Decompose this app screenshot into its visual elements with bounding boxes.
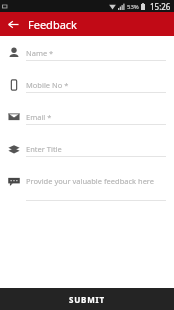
button[interactable]: SUBMIT: [0, 288, 174, 310]
button[interactable]: Name *: [0, 44, 174, 76]
button[interactable]: Enter Title: [0, 140, 174, 172]
button[interactable]: Email *: [0, 108, 174, 140]
button[interactable]: Mobile No *: [0, 76, 174, 108]
staticText: Enter Title: [26, 144, 62, 154]
staticText: SUBMIT: [69, 294, 105, 305]
staticText: Mobile No *: [26, 80, 69, 90]
button[interactable]: Provide your valuable feedback here: [0, 172, 174, 204]
staticText: Feedback: [28, 17, 77, 32]
staticText: Email *: [26, 112, 52, 122]
staticText: 15:26: [150, 1, 171, 12]
staticText: Provide your valuable feedback here: [26, 176, 155, 186]
staticText: Name *: [26, 48, 54, 58]
staticText: 53%: [127, 3, 139, 11]
button[interactable]: Back: [5, 16, 21, 32]
